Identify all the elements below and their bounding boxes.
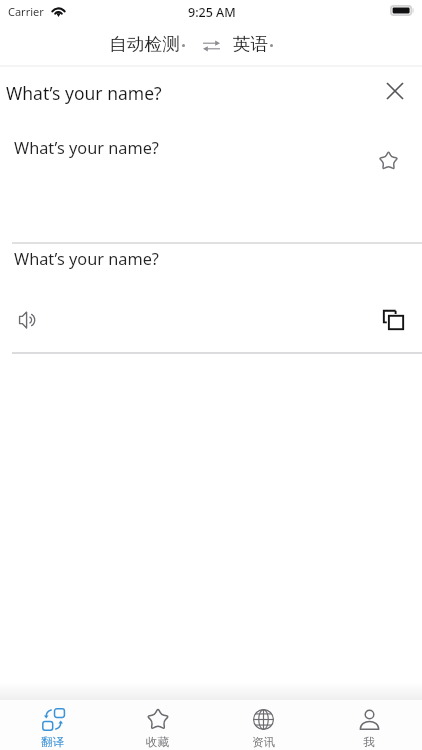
staticText: 自动检测 xyxy=(109,33,181,55)
button[interactable]: What’s your name? xyxy=(0,130,422,242)
button[interactable]: Speak xyxy=(12,304,44,336)
button[interactable]: What’s your name? xyxy=(0,241,422,349)
staticText: 收藏 xyxy=(146,735,169,749)
button[interactable]: Clear xyxy=(378,74,412,108)
staticText: 翻译 xyxy=(41,735,64,749)
staticText: 9:25 AM xyxy=(188,4,236,21)
staticText: What’s your name? xyxy=(14,137,159,159)
button[interactable]: 英语 xyxy=(229,28,277,60)
button[interactable]: 翻译 xyxy=(0,703,105,750)
button[interactable]: 资讯 xyxy=(210,703,316,750)
staticText: 资讯 xyxy=(252,735,275,749)
button[interactable]: 我 xyxy=(316,703,422,750)
button[interactable]: Swap languages xyxy=(201,32,225,56)
button[interactable]: 自动检测 xyxy=(105,28,189,60)
button[interactable]: Copy xyxy=(377,304,409,336)
button[interactable]: Favorite xyxy=(373,145,403,175)
staticText: 英语 xyxy=(233,33,269,55)
staticText: What’s your name? xyxy=(14,248,159,270)
staticText: What’s your name? xyxy=(6,81,162,105)
staticText: 我 xyxy=(363,735,375,749)
staticText: Carrier xyxy=(8,4,44,19)
button[interactable]: 收藏 xyxy=(105,703,210,750)
